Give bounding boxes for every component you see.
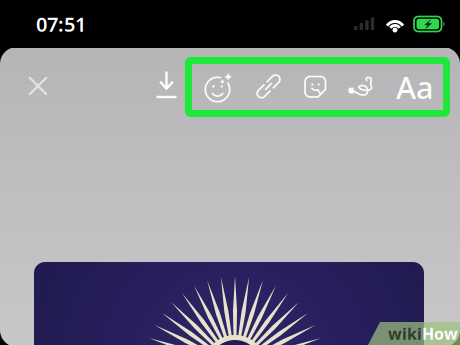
button[interactable]: Add link xyxy=(254,72,284,102)
button[interactable]: Text xyxy=(396,67,434,107)
button[interactable]: Effects xyxy=(204,71,235,102)
staticText: wiki xyxy=(388,323,422,344)
staticText: How xyxy=(422,323,458,344)
button[interactable]: Draw xyxy=(347,73,377,100)
staticText: 07:51 xyxy=(36,11,86,37)
staticText: Aa xyxy=(396,67,434,107)
button[interactable]: Close xyxy=(16,64,60,108)
button[interactable]: Stickers xyxy=(302,73,328,100)
button[interactable]: Save to device xyxy=(146,61,187,109)
